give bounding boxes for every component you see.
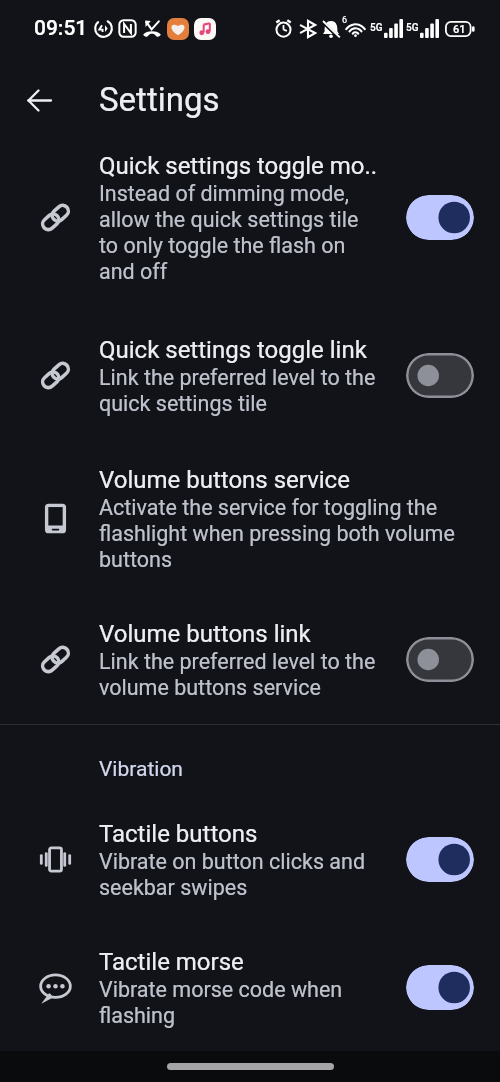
- staticText: Link the preferred level to the quick se…: [99, 364, 379, 416]
- button[interactable]: Quick settings toggle mo..: [0, 127, 500, 311]
- button[interactable]: Toggle on: [406, 965, 474, 1010]
- button[interactable]: Volume buttons service: [0, 441, 500, 595]
- staticText: 5G: [370, 22, 383, 34]
- staticText: Volume buttons link: [99, 618, 311, 648]
- button[interactable]: Toggle on: [406, 837, 474, 882]
- button[interactable]: Back: [15, 76, 63, 124]
- button[interactable]: Tactile morse: [0, 923, 500, 1051]
- staticText: Tactile buttons: [99, 818, 258, 848]
- staticText: Vibration: [99, 757, 183, 782]
- staticText: Quick settings toggle mo..: [99, 150, 378, 180]
- button[interactable]: Tactile buttons: [0, 795, 500, 923]
- button[interactable]: Toggle off: [406, 637, 474, 682]
- staticText: Vibrate on button clicks and seekbar swi…: [99, 848, 379, 900]
- staticText: Volume buttons service: [99, 464, 350, 494]
- staticText: Link the preferred level to the volume b…: [99, 648, 379, 700]
- staticText: 09:51: [34, 16, 88, 41]
- button[interactable]: Quick settings toggle link: [0, 311, 500, 441]
- staticText: Instead of dimming mode, allow the quick…: [99, 180, 379, 284]
- staticText: 5G: [406, 22, 419, 34]
- staticText: Activate the service for toggling the fl…: [99, 494, 464, 572]
- staticText: Settings: [99, 80, 220, 119]
- staticText: Vibrate morse code when flashing: [99, 976, 379, 1028]
- staticText: Quick settings toggle link: [99, 334, 367, 364]
- button[interactable]: Toggle off: [406, 353, 474, 398]
- button[interactable]: Volume buttons link: [0, 595, 500, 724]
- staticText: Tactile morse: [99, 946, 244, 976]
- staticText: 61: [453, 23, 466, 36]
- button[interactable]: Toggle on: [406, 195, 474, 240]
- staticText: 6: [342, 15, 348, 26]
